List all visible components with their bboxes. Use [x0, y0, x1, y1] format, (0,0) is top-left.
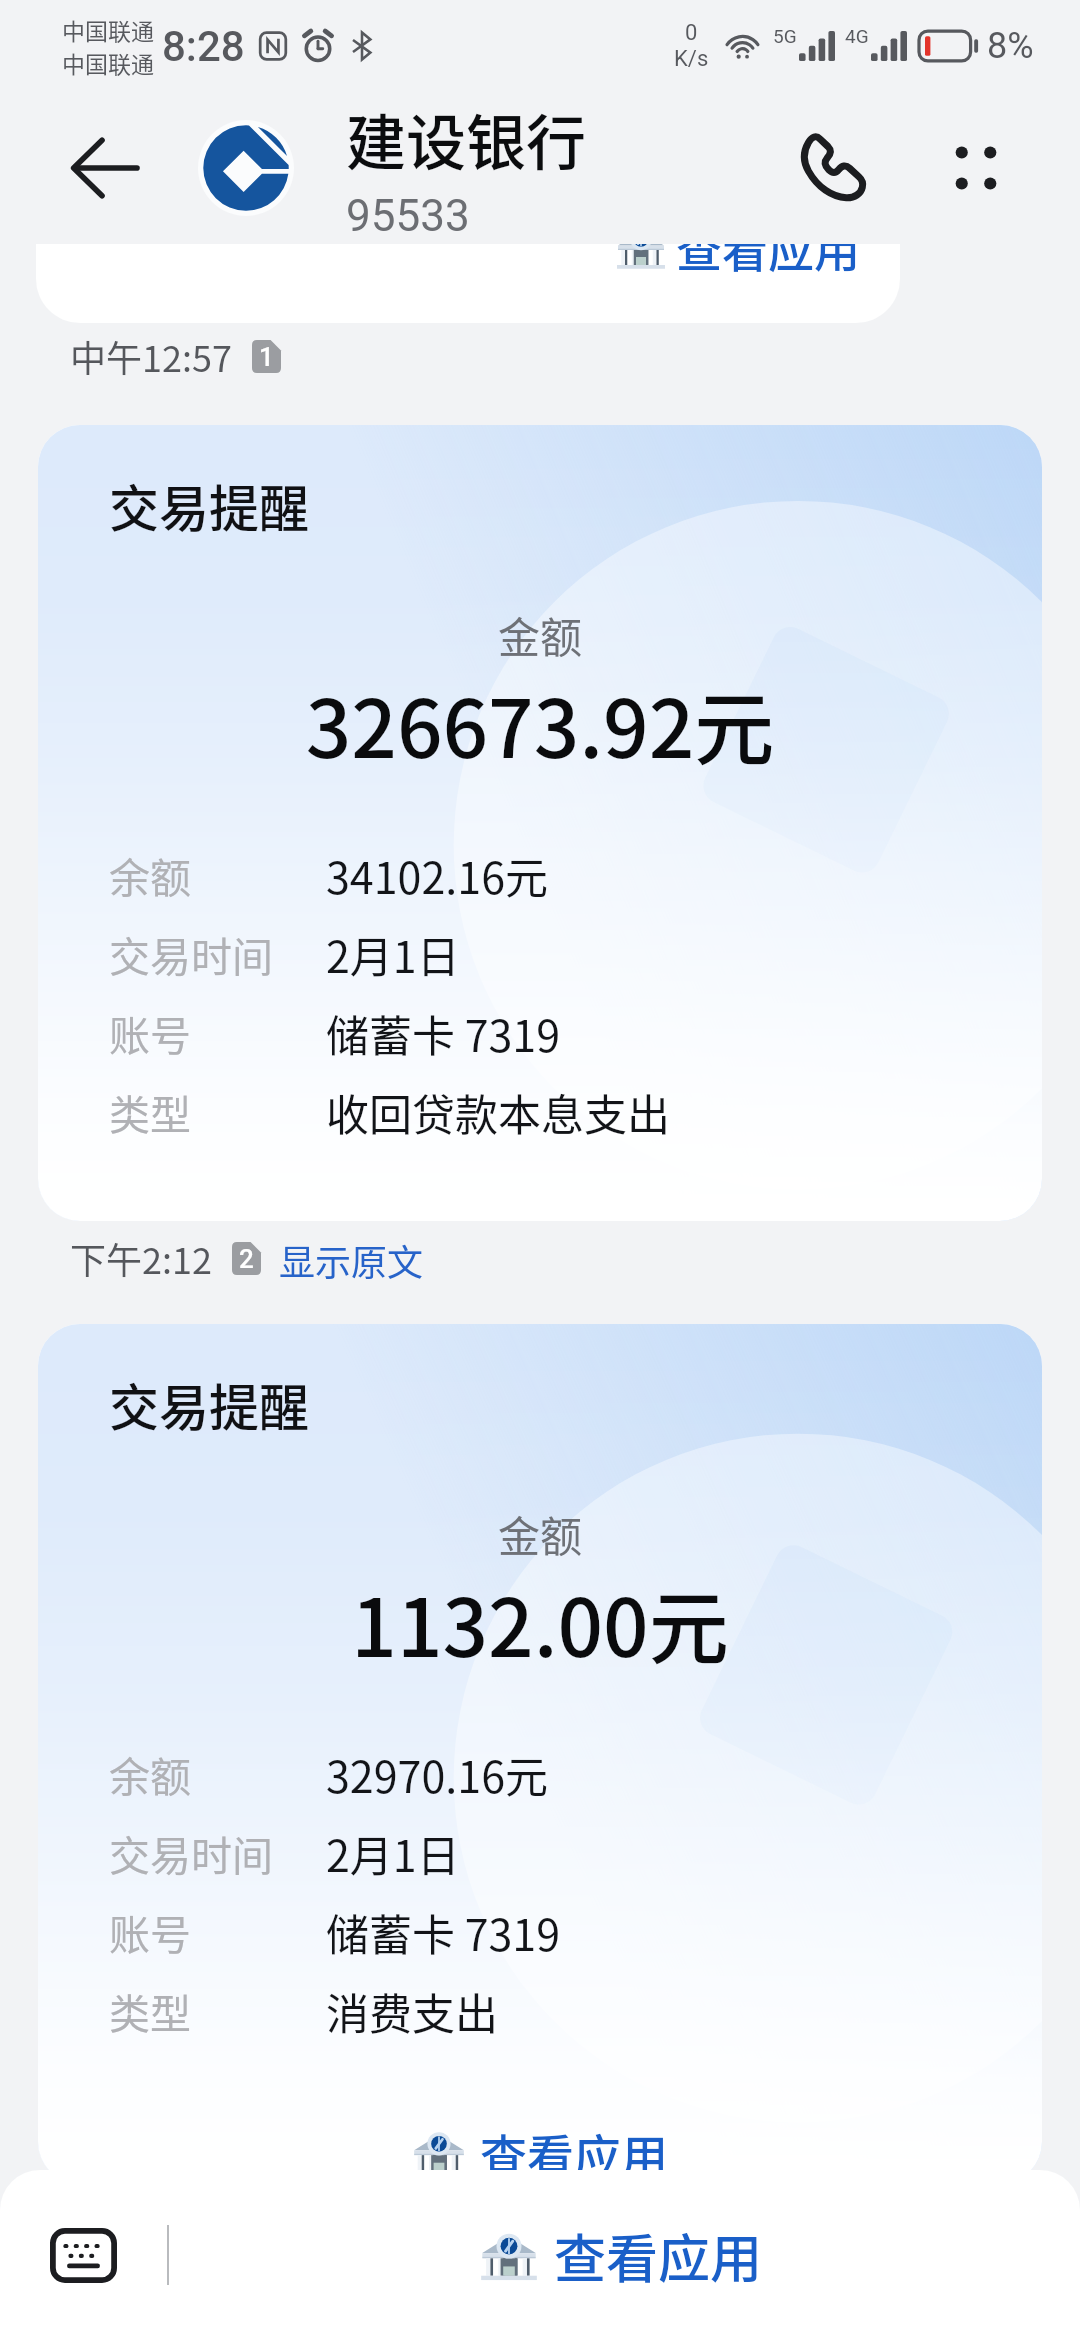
staticText: 金额 — [38, 1503, 1042, 1564]
staticText: 2月1日 — [326, 923, 460, 985]
staticText: 0 — [685, 20, 698, 46]
staticText: 查看应用 — [480, 2119, 668, 2184]
staticText: 建设银行 — [346, 95, 586, 182]
staticText: 95533 — [346, 190, 470, 242]
button[interactable]: Back — [58, 122, 150, 214]
button[interactable]: 查看应用 — [480, 2218, 763, 2293]
button[interactable]: 交易提醒 — [38, 425, 1042, 1221]
staticText: 1 — [259, 342, 274, 372]
staticText: 2月1日 — [326, 1822, 460, 1884]
staticText: 中国联通 — [62, 13, 154, 46]
staticText: 交易提醒 — [109, 469, 309, 541]
staticText: 金额 — [38, 604, 1042, 665]
button[interactable]: 显示原文 — [279, 1232, 424, 1284]
staticText: 4G — [845, 25, 869, 47]
staticText: 34102.16元 — [326, 844, 549, 906]
button[interactable]: Keyboard — [50, 2228, 117, 2283]
staticText: 5G — [773, 25, 797, 47]
staticText: 储蓄卡 7319 — [326, 1901, 561, 1963]
staticText: 类型 — [109, 1082, 191, 1141]
staticText: 查看应用 — [554, 2218, 763, 2293]
staticText: 32970.16元 — [326, 1743, 549, 1805]
staticText: 储蓄卡 7319 — [326, 1002, 561, 1064]
staticText: 中午12:57 — [70, 330, 232, 382]
staticText: 中国联通 — [62, 46, 154, 79]
staticText: 2 — [239, 1244, 254, 1274]
button[interactable]: 交易提醒 — [38, 1324, 1042, 2184]
staticText: 余额 — [109, 1744, 191, 1803]
staticText: 类型 — [109, 1981, 191, 2040]
staticText: 余额 — [109, 845, 191, 904]
button[interactable]: 查看应用 — [36, 244, 900, 323]
staticText: 收回贷款本息支出 — [326, 1081, 670, 1143]
staticText: 显示原文 — [279, 1234, 424, 1282]
staticText: 交易时间 — [109, 924, 273, 983]
button[interactable]: 查看应用 — [38, 2113, 1042, 2184]
staticText: 8:28 — [162, 22, 245, 71]
staticText: 1132.00元 — [38, 1564, 1042, 1680]
staticText: 326673.92元 — [38, 665, 1042, 781]
staticText: 账号 — [109, 1003, 191, 1062]
staticText: 查看应用 — [676, 244, 860, 281]
staticText: 交易提醒 — [109, 1368, 309, 1440]
staticText: 8% — [987, 25, 1034, 67]
button[interactable]: Call — [780, 114, 888, 222]
staticText: 账号 — [109, 1902, 191, 1961]
staticText: 消费支出 — [326, 1980, 498, 2042]
staticText: 交易时间 — [109, 1823, 273, 1882]
staticText: 下午2:12 — [70, 1232, 212, 1284]
button[interactable]: More options — [934, 126, 1018, 210]
staticText: K/s — [674, 46, 709, 72]
